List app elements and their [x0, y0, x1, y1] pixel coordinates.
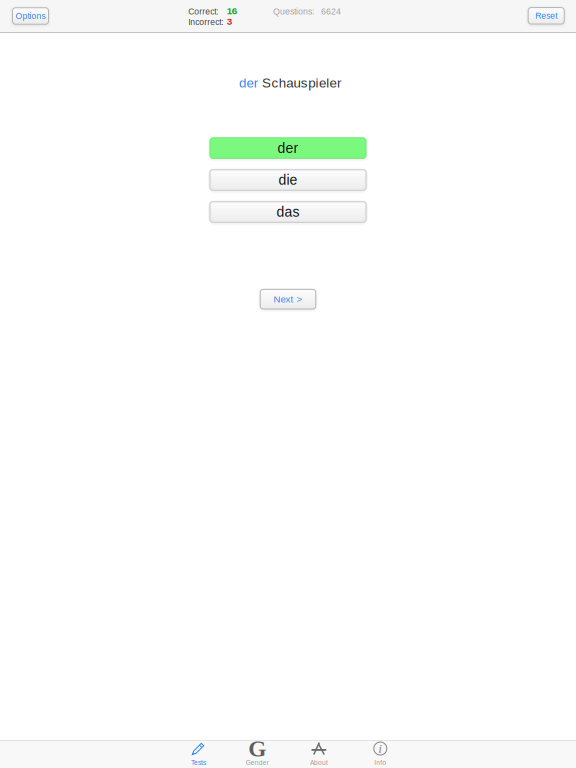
staticText: Tests: [191, 759, 206, 766]
staticText: Next >: [273, 294, 302, 304]
button[interactable]: Next >: [260, 289, 316, 309]
staticText: Options: [15, 11, 45, 21]
button[interactable]: i: [353, 740, 407, 768]
staticText: Correct:: [188, 7, 218, 16]
staticText: die: [278, 172, 297, 188]
staticText: Gender: [246, 759, 269, 766]
staticText: G: [248, 736, 266, 761]
button[interactable]: About: [292, 740, 346, 768]
button[interactable]: die: [210, 170, 366, 190]
button[interactable]: Reset: [528, 8, 564, 24]
staticText: Schauspieler: [262, 76, 341, 90]
staticText: Info: [374, 759, 386, 766]
button[interactable]: das: [210, 202, 366, 222]
button[interactable]: G: [230, 740, 284, 768]
staticText: Reset: [535, 11, 557, 20]
staticText: Incorrect:: [188, 17, 223, 27]
staticText: i: [378, 741, 382, 756]
staticText: der: [277, 140, 298, 156]
staticText: 16: [227, 5, 237, 16]
staticText: der: [239, 76, 262, 90]
staticText: Questions:: [273, 7, 314, 16]
staticText: das: [276, 204, 299, 220]
staticText: 3: [227, 16, 232, 27]
staticText: About: [310, 759, 328, 766]
staticText: 6624: [321, 7, 341, 16]
button[interactable]: der: [210, 138, 366, 158]
button[interactable]: Options: [12, 8, 48, 24]
button[interactable]: Tests: [171, 740, 225, 768]
